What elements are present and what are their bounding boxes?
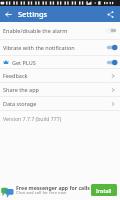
button[interactable]: Share the app [0,83,120,96]
button[interactable]: Back [3,9,14,20]
staticText: Enable/disable the alarm [3,27,105,34]
staticText: Install [96,187,112,194]
button[interactable]: Share [105,9,116,20]
staticText: Version 7.7.7 (build 777) [3,115,62,122]
button[interactable]: Version 7.7.7 (build 777) [0,111,120,125]
button[interactable]: Vibrate with the notification [0,40,120,55]
button[interactable]: Install [91,184,117,196]
staticText: Share the app [3,86,110,93]
button[interactable]: Data storage [0,97,120,110]
staticText: Data storage [3,100,110,107]
staticText: Free messenger app for calls [16,184,90,191]
button[interactable]: Enable/disable the alarm [0,22,120,39]
staticText: Chat and call for free now [16,190,67,196]
button[interactable]: Free messenger app for calls [0,182,120,200]
staticText: Get PLUS [12,59,105,66]
staticText: Vibrate with the notification [3,44,105,51]
button[interactable]: Get PLUS [0,56,120,68]
button[interactable]: Feedback [0,69,120,82]
staticText: Settings [18,9,48,19]
staticText: Feedback [3,72,110,79]
